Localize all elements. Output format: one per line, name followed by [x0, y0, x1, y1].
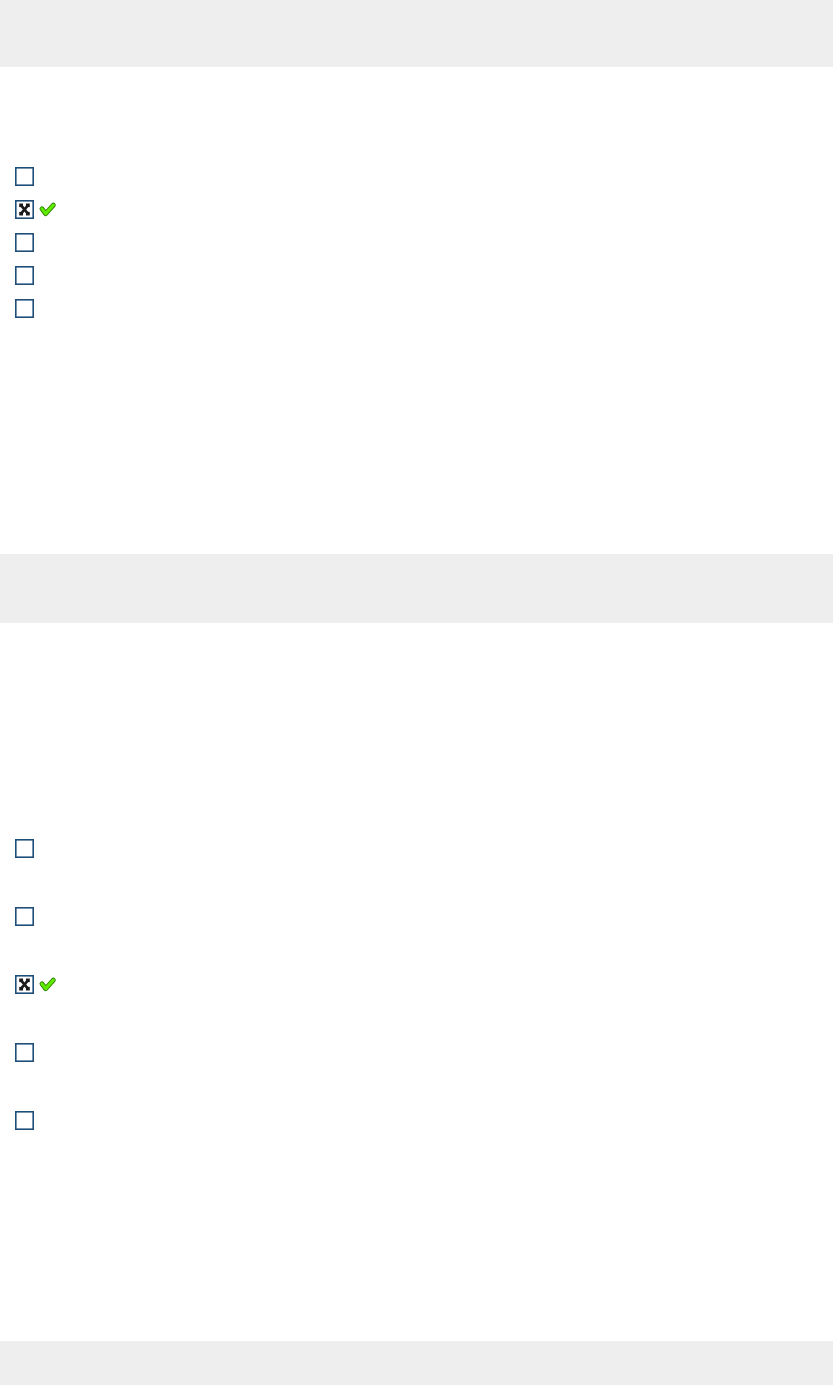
- button[interactable]: Option A, not selected: [0, 160, 833, 193]
- button[interactable]: Choice 3, selected, correct answer: [0, 950, 833, 1018]
- button[interactable]: Choice 1, not selected: [0, 814, 833, 882]
- button[interactable]: Option D, not selected: [0, 259, 833, 292]
- button[interactable]: Option E, not selected: [0, 292, 833, 325]
- button[interactable]: Choice 4, not selected: [0, 1018, 833, 1086]
- button[interactable]: Option B, selected, correct answer: [0, 193, 833, 226]
- button[interactable]: Choice 5, not selected: [0, 1086, 833, 1154]
- button[interactable]: Option C, not selected: [0, 226, 833, 259]
- button[interactable]: Choice 2, not selected: [0, 882, 833, 950]
